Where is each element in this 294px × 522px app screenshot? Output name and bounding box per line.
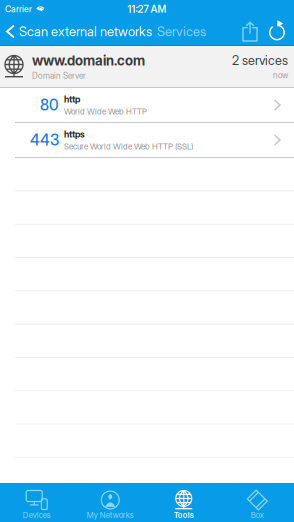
button[interactable]: 443 bbox=[0, 123, 294, 158]
button[interactable]: Share bbox=[237, 18, 263, 44]
staticText: Domain Server bbox=[32, 71, 86, 81]
button[interactable]: Refresh bbox=[263, 18, 294, 44]
staticText: Secure World Wide Web HTTP (SSL) bbox=[64, 142, 193, 151]
button[interactable]: Box bbox=[220, 483, 294, 522]
staticText: 80 bbox=[40, 96, 59, 114]
staticText: Tools bbox=[174, 510, 194, 520]
staticText: https bbox=[64, 129, 85, 140]
staticText: 2 services bbox=[232, 53, 288, 68]
button[interactable]: Tools bbox=[147, 483, 220, 522]
staticText: 11:27 AM bbox=[127, 3, 166, 15]
staticText: Box bbox=[251, 510, 264, 520]
button[interactable]: 80 bbox=[0, 88, 294, 123]
staticText: Services bbox=[157, 24, 206, 39]
button[interactable]: Scan external networks bbox=[0, 18, 152, 44]
button[interactable]: My Networks bbox=[73, 483, 147, 522]
staticText: Scan external networks bbox=[19, 24, 152, 39]
staticText: now bbox=[273, 70, 288, 80]
staticText: http bbox=[64, 94, 80, 105]
staticText: World Wide Web HTTP bbox=[64, 107, 147, 116]
button[interactable]: Devices bbox=[0, 483, 73, 522]
button[interactable]: Services bbox=[152, 18, 206, 44]
staticText: Devices bbox=[23, 510, 51, 520]
staticText: My Networks bbox=[87, 510, 134, 520]
staticText: 443 bbox=[30, 131, 59, 149]
staticText: www.domain.com bbox=[32, 52, 145, 69]
staticText: Carrier bbox=[5, 4, 32, 14]
